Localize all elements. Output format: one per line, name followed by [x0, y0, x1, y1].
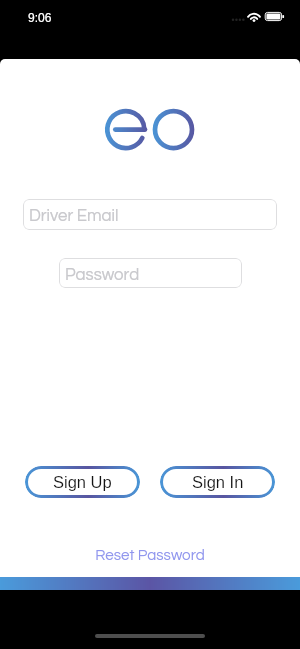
staticText: Password [65, 266, 140, 283]
staticText: Reset Password [95, 548, 205, 564]
other: Status icons [228, 8, 286, 24]
button[interactable]: Driver Email [23, 199, 277, 230]
button[interactable]: Sign Up [25, 466, 140, 498]
button[interactable]: Password [59, 258, 242, 288]
button[interactable]: Sign In [160, 466, 275, 498]
staticText: Sign In [192, 473, 244, 491]
staticText: Sign Up [53, 473, 112, 491]
button[interactable]: Reset Password [0, 546, 300, 566]
staticText: Driver Email [29, 207, 119, 224]
staticText: 9:06 [28, 11, 52, 24]
other: eo logo [100, 105, 200, 155]
